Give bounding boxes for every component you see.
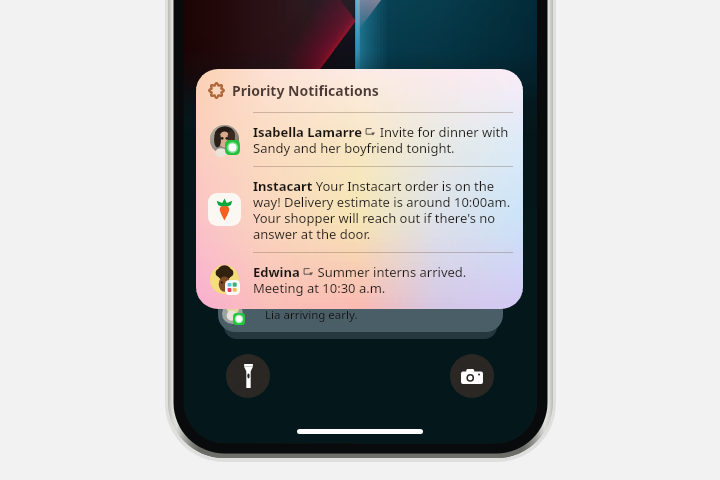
button[interactable]: Edwina → Summer interns arrived. Meeting… xyxy=(196,253,523,306)
button[interactable]: Flashlight xyxy=(226,354,270,398)
staticText: Isabella Lamarre → Invite for dinner wit… xyxy=(253,123,511,156)
staticText: Edwina → Summer interns arrived. Meeting… xyxy=(253,263,467,296)
button[interactable]: Camera xyxy=(450,354,494,398)
button[interactable]: Instacart Your Instacart order is on the… xyxy=(196,167,523,252)
staticText: Priority Notifications xyxy=(232,81,379,100)
button[interactable]: Priority Notifications xyxy=(196,69,523,309)
button[interactable]: Isabella Lamarre → Invite for dinner wit… xyxy=(196,113,523,166)
staticText: Lia arriving early. xyxy=(265,307,358,323)
button[interactable] xyxy=(224,314,497,339)
button[interactable]: Lia arriving early. xyxy=(218,290,503,332)
staticText: Instacart Your Instacart order is on the… xyxy=(253,177,511,242)
